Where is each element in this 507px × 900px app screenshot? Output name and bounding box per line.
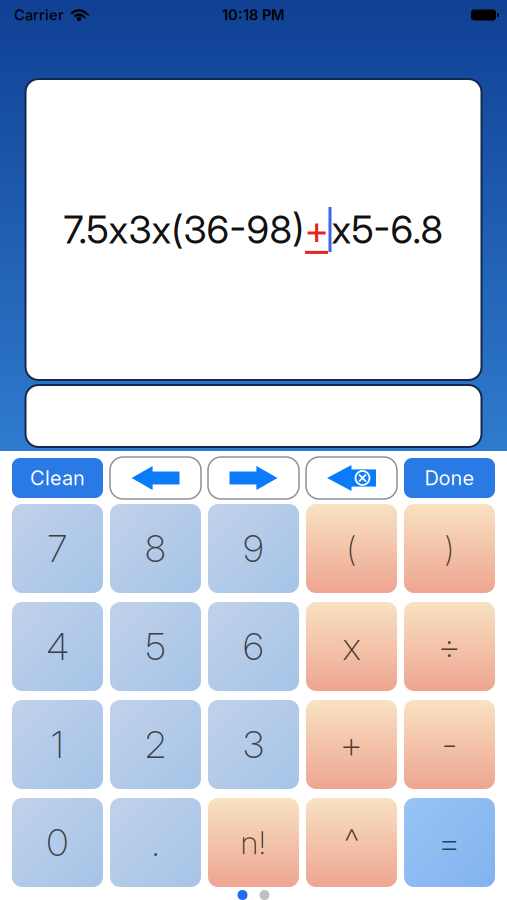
button[interactable]: 8: [110, 504, 201, 593]
button[interactable]: 2: [110, 700, 201, 789]
staticText: +: [304, 206, 328, 253]
staticText: x5-6.8: [331, 206, 443, 253]
button[interactable]: (: [306, 504, 397, 593]
button[interactable]: 1: [12, 700, 103, 789]
button[interactable]: x: [306, 602, 397, 691]
staticText: 8: [145, 526, 166, 570]
staticText: -: [442, 722, 457, 766]
button[interactable]: -: [404, 700, 495, 789]
button[interactable]: 9: [208, 504, 299, 593]
staticText: (: [346, 529, 356, 568]
staticText: 3x(36-98): [128, 206, 304, 253]
staticText: n!: [240, 824, 266, 861]
button[interactable]: 5: [110, 602, 201, 691]
button[interactable]: 6: [208, 602, 299, 691]
staticText: Done: [424, 466, 474, 490]
button[interactable]: 7: [12, 504, 103, 593]
button[interactable]: =: [404, 798, 495, 887]
button[interactable]: 3: [208, 700, 299, 789]
button[interactable]: +: [306, 700, 397, 789]
staticText: =: [438, 820, 461, 864]
button[interactable]: ): [404, 504, 495, 593]
button[interactable]: Clean: [12, 458, 103, 498]
button[interactable]: ^: [306, 798, 397, 887]
staticText: ^: [344, 820, 358, 864]
button[interactable]: ÷: [404, 602, 495, 691]
button[interactable]: .: [110, 798, 201, 887]
staticText: 6: [243, 624, 264, 668]
staticText: 4: [46, 624, 68, 668]
staticText: 0: [46, 820, 68, 864]
staticText: +: [340, 722, 363, 766]
button[interactable]: n!: [208, 798, 299, 887]
button[interactable]: [306, 457, 397, 499]
staticText: 7: [47, 526, 67, 570]
staticText: 10:18 PM: [222, 6, 285, 24]
staticText: Carrier: [14, 6, 64, 24]
button[interactable]: 4: [12, 602, 103, 691]
button[interactable]: 0: [12, 798, 103, 887]
staticText: 3: [243, 722, 264, 766]
staticText: x: [342, 624, 360, 668]
staticText: 2: [145, 722, 166, 766]
staticText: 1: [51, 722, 64, 766]
button[interactable]: [208, 457, 299, 499]
button[interactable]: [110, 457, 201, 499]
staticText: 5: [145, 624, 165, 668]
staticText: ): [444, 529, 454, 568]
staticText: .: [151, 820, 159, 864]
staticText: 9: [243, 526, 264, 570]
button[interactable]: Done: [404, 458, 495, 498]
staticText: ÷: [438, 624, 461, 668]
button[interactable]: [237, 890, 269, 900]
staticText: Clean: [30, 466, 85, 490]
staticText: 7.5x: [63, 206, 128, 253]
